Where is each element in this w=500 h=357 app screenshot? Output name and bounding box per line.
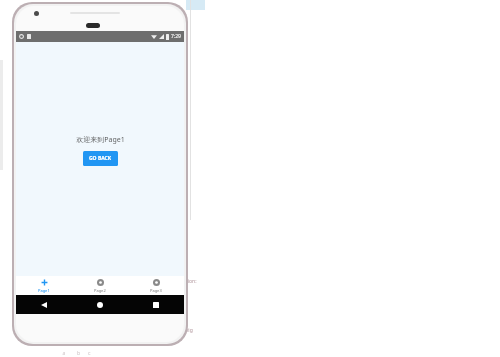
- button[interactable]: GO BACK: [83, 151, 118, 166]
- button[interactable]: Home: [72, 295, 128, 314]
- staticText: Page3: [150, 288, 162, 293]
- staticText: 欢迎来到Page1: [76, 135, 125, 145]
- staticText: tion:: [186, 278, 197, 285]
- button[interactable]: Page3: [128, 276, 184, 295]
- button[interactable]: Recents: [128, 295, 184, 314]
- staticText: Page2: [94, 288, 106, 293]
- staticText: Page1: [38, 288, 50, 293]
- staticText: a b c: [60, 350, 91, 357]
- button[interactable]: Back: [16, 295, 72, 314]
- staticText: GO BACK: [89, 155, 112, 162]
- button[interactable]: Page2: [72, 276, 128, 295]
- staticText: 7:29: [171, 33, 181, 40]
- button[interactable]: Page1: [16, 276, 72, 295]
- staticText: avig: [183, 327, 193, 334]
